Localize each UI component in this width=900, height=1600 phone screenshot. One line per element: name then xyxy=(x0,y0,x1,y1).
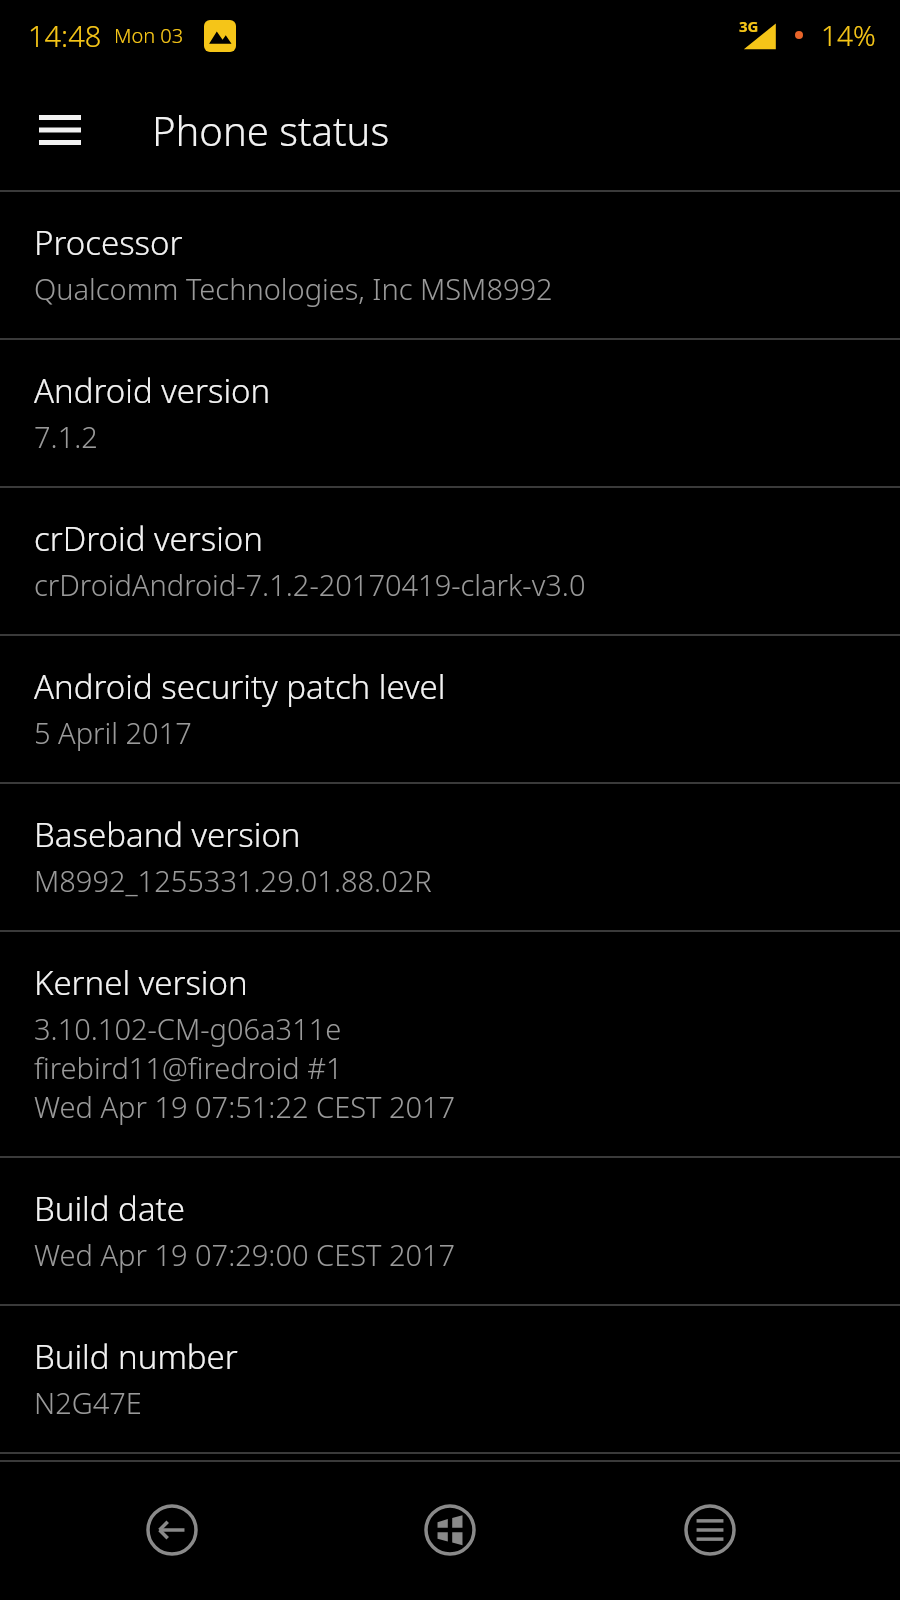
staticText: crDroid version xyxy=(34,516,263,561)
staticText: firebird11@firedroid #1 xyxy=(34,1048,343,1087)
staticText: Phone status xyxy=(152,103,390,157)
staticText: Kernel version xyxy=(34,960,248,1005)
staticText: Wed Apr 19 07:29:00 CEST 2017 xyxy=(34,1235,456,1274)
button[interactable]: Menu xyxy=(660,1480,760,1580)
staticText: Mon 03 xyxy=(114,22,184,49)
staticText: SELinux status xyxy=(34,1482,251,1527)
staticText: Build date xyxy=(34,1186,186,1231)
staticText: Android security patch level xyxy=(34,664,446,709)
staticText: Wed Apr 19 07:51:22 CEST 2017 xyxy=(34,1087,456,1126)
staticText: 3G xyxy=(739,16,759,36)
staticText: crDroidAndroid-7.1.2-20170419-clark-v3.0 xyxy=(34,565,586,604)
staticText: 14% xyxy=(821,16,876,54)
button[interactable]: Build date xyxy=(0,1158,900,1304)
button[interactable]: Android security patch level xyxy=(0,636,900,782)
button[interactable]: Processor xyxy=(0,192,900,338)
button[interactable]: Home xyxy=(400,1480,500,1580)
button[interactable]: Baseband version xyxy=(0,784,900,930)
button[interactable]: crDroid version xyxy=(0,488,900,634)
staticText: 7.1.2 xyxy=(34,417,98,456)
button[interactable]: Open navigation menu xyxy=(20,90,100,170)
button[interactable]: Back xyxy=(122,1480,222,1580)
staticText: M8992_1255331.29.01.88.02R xyxy=(34,861,432,900)
staticText: Baseband version xyxy=(34,812,301,857)
staticText: Qualcomm Technologies, Inc MSM8992 xyxy=(34,269,553,308)
staticText: 3.10.102-CM-g06a311e xyxy=(34,1009,342,1048)
button[interactable]: Kernel version xyxy=(0,932,900,1156)
button[interactable]: Android version xyxy=(0,340,900,486)
staticText: Processor xyxy=(34,220,183,265)
staticText: 14:48 xyxy=(28,16,102,55)
staticText: N2G47E xyxy=(34,1383,142,1422)
button[interactable]: SELinux status xyxy=(0,1454,900,1600)
button[interactable]: Build number xyxy=(0,1306,900,1452)
staticText: Android version xyxy=(34,368,271,413)
staticText: Build number xyxy=(34,1334,238,1379)
staticText: Enforcing xyxy=(34,1531,160,1570)
staticText: 5 April 2017 xyxy=(34,713,192,752)
